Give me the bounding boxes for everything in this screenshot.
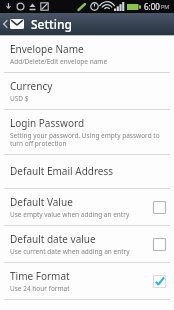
staticText: Use current date when adding an entry xyxy=(10,247,130,256)
button[interactable]: Login Password xyxy=(0,110,174,154)
staticText: PM xyxy=(161,3,170,10)
other: Unchecked xyxy=(153,201,166,214)
staticText: Login Password xyxy=(10,116,85,130)
button[interactable]: Currency xyxy=(0,73,174,109)
other: Unchecked xyxy=(153,238,166,251)
staticText: USD $ xyxy=(10,94,29,103)
button[interactable]: Default Value xyxy=(0,189,174,225)
button[interactable]: Default Email Address xyxy=(0,155,174,188)
staticText: Currency xyxy=(10,79,53,93)
staticText: Setting xyxy=(31,16,72,32)
button[interactable]: Time Format xyxy=(0,263,174,299)
staticText: Use 24 hour format xyxy=(10,284,70,293)
staticText: Default Value xyxy=(10,195,73,209)
button[interactable]: Back xyxy=(0,13,26,35)
staticText: Add/Delete/Edit envelope name xyxy=(10,57,108,66)
staticText: Envelope Name xyxy=(10,42,84,56)
button[interactable]: Envelope Name xyxy=(0,36,174,72)
button[interactable]: Default date value xyxy=(0,226,174,262)
staticText: Default date value xyxy=(10,232,96,246)
staticText: Use empty value when adding an entry xyxy=(10,210,130,219)
staticText: Default Email Address xyxy=(10,164,114,178)
other: Checked xyxy=(153,275,166,288)
staticText: Time Format xyxy=(10,269,70,283)
staticText: 6:00 xyxy=(144,1,160,12)
staticText: Setting your password. Using empty passw… xyxy=(10,131,166,148)
